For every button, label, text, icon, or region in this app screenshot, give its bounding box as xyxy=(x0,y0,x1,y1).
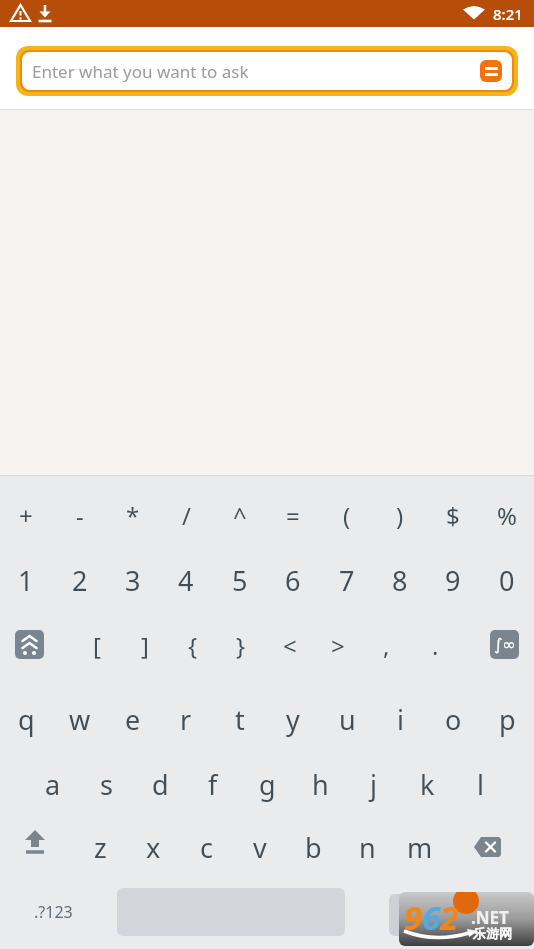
button[interactable]: Enter what you want to ask xyxy=(16,46,518,96)
button[interactable]: ^ xyxy=(214,483,266,547)
button[interactable]: f xyxy=(187,752,239,816)
staticText: .NET xyxy=(471,906,509,929)
button[interactable] xyxy=(15,630,44,659)
button[interactable] xyxy=(480,60,502,82)
button[interactable]: 6 xyxy=(267,548,319,612)
button[interactable]: a xyxy=(27,752,79,816)
button[interactable]: w xyxy=(54,687,106,751)
button[interactable]: u xyxy=(321,687,373,751)
button[interactable]: v xyxy=(234,815,286,879)
button[interactable]: h xyxy=(294,752,346,816)
staticText: / xyxy=(182,499,191,532)
button[interactable]: $ xyxy=(427,483,479,547)
staticText: ) xyxy=(396,499,404,532)
button[interactable]: 4 xyxy=(160,548,212,612)
staticText: .?123 xyxy=(34,901,73,923)
staticText: = xyxy=(286,499,300,532)
button[interactable]: e xyxy=(107,687,159,751)
staticText: j xyxy=(370,766,377,803)
button[interactable]: j xyxy=(347,752,399,816)
button[interactable]: ) xyxy=(374,483,426,547)
button[interactable]: .?123 xyxy=(18,890,88,934)
button[interactable] xyxy=(15,827,55,867)
button[interactable]: % xyxy=(481,483,533,547)
button[interactable]: 2 xyxy=(54,548,106,612)
button[interactable]: * xyxy=(107,483,159,547)
button[interactable]: 8 xyxy=(374,548,426,612)
button[interactable]: 7 xyxy=(321,548,373,612)
button[interactable]: 0 xyxy=(481,548,533,612)
button[interactable]: = xyxy=(267,483,319,547)
staticText: 0 xyxy=(499,562,515,599)
staticText: 962 xyxy=(404,895,459,940)
staticText: 8 xyxy=(392,562,408,599)
button[interactable]: n xyxy=(341,815,393,879)
staticText: i xyxy=(397,701,404,738)
staticText: 4 xyxy=(178,562,194,599)
button[interactable]: r xyxy=(160,687,212,751)
button[interactable]: 1 xyxy=(0,548,52,612)
button[interactable]: + xyxy=(0,483,52,547)
button[interactable] xyxy=(468,827,508,867)
button[interactable]: m xyxy=(394,815,446,879)
staticText: k xyxy=(420,766,435,803)
staticText: z xyxy=(94,829,107,866)
staticText: 3 xyxy=(125,562,141,599)
staticText: u xyxy=(339,701,356,738)
staticText: s xyxy=(100,766,113,803)
staticText: e xyxy=(125,701,141,738)
staticText: ( xyxy=(343,499,351,532)
button[interactable]: / xyxy=(160,483,212,547)
button[interactable] xyxy=(389,894,501,936)
button[interactable]: > xyxy=(312,613,364,677)
staticText: 5 xyxy=(232,562,248,599)
button[interactable]: d xyxy=(134,752,186,816)
button[interactable]: < xyxy=(264,613,316,677)
button[interactable]: b xyxy=(287,815,339,879)
button[interactable]: k xyxy=(401,752,453,816)
button[interactable]: 5 xyxy=(214,548,266,612)
button[interactable]: [ xyxy=(71,613,123,677)
staticText: ^ xyxy=(233,499,247,532)
staticText: d xyxy=(152,766,169,803)
button[interactable]: z xyxy=(74,815,126,879)
button[interactable]: , xyxy=(360,613,412,677)
staticText: 6 xyxy=(285,562,301,599)
staticText: , xyxy=(383,629,390,662)
staticText: % xyxy=(497,499,517,532)
button[interactable]: } xyxy=(215,613,267,677)
staticText: 1 xyxy=(18,562,34,599)
button[interactable]: g xyxy=(241,752,293,816)
staticText: a xyxy=(45,766,61,803)
button[interactable]: 9 xyxy=(427,548,479,612)
staticText: q xyxy=(18,701,35,738)
button[interactable]: ] xyxy=(119,613,171,677)
button[interactable]: . xyxy=(409,613,461,677)
staticText: f xyxy=(208,766,218,803)
staticText: 2 xyxy=(72,562,88,599)
staticText: [ xyxy=(93,629,101,662)
staticText: x xyxy=(146,829,161,866)
button[interactable]: ∫∞ xyxy=(490,630,519,659)
button[interactable]: t xyxy=(214,687,266,751)
button[interactable]: x xyxy=(127,815,179,879)
staticText: h xyxy=(312,766,329,803)
button[interactable]: - xyxy=(54,483,106,547)
button[interactable]: c xyxy=(180,815,232,879)
button[interactable]: 3 xyxy=(107,548,159,612)
button[interactable]: i xyxy=(374,687,426,751)
button[interactable]: s xyxy=(80,752,132,816)
button[interactable]: p xyxy=(481,687,533,751)
button[interactable]: y xyxy=(267,687,319,751)
button[interactable]: o xyxy=(427,687,479,751)
staticText: g xyxy=(259,766,276,803)
button[interactable]: q xyxy=(0,687,52,751)
staticText: t xyxy=(235,701,245,738)
button[interactable]: ( xyxy=(321,483,373,547)
button[interactable]: { xyxy=(167,613,219,677)
staticText: < xyxy=(283,629,297,662)
staticText: 乐游网 xyxy=(473,925,512,941)
staticText: p xyxy=(499,701,516,738)
button[interactable]: l xyxy=(454,752,506,816)
